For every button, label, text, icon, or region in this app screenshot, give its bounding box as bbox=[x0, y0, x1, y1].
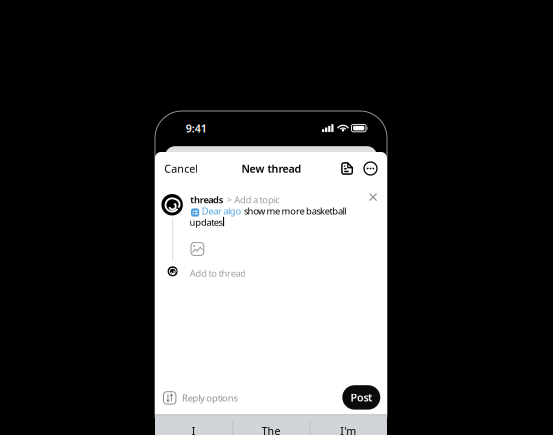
staticText: Post bbox=[350, 390, 372, 404]
button[interactable]: More options bbox=[360, 158, 381, 179]
staticText: Add to thread bbox=[190, 267, 246, 279]
button[interactable]: Add photo bbox=[187, 239, 208, 259]
staticText: show me more basketball bbox=[244, 205, 346, 217]
staticText: updates bbox=[190, 216, 222, 228]
button[interactable]: I'm bbox=[310, 414, 387, 435]
staticText: 9:41 bbox=[186, 121, 207, 135]
staticText: > bbox=[227, 193, 232, 206]
button[interactable]: The bbox=[232, 414, 310, 435]
button[interactable]: I bbox=[155, 414, 232, 435]
button[interactable]: Add a topic bbox=[232, 190, 281, 209]
staticText: The bbox=[261, 424, 280, 435]
staticText: New thread bbox=[242, 161, 302, 176]
button[interactable]: Remove post bbox=[365, 189, 382, 206]
button[interactable]: Reply options bbox=[159, 388, 241, 408]
staticText: threads bbox=[190, 193, 224, 206]
staticText: Dear algo bbox=[202, 205, 241, 217]
button[interactable]: Post bbox=[342, 385, 380, 410]
staticText: Cancel bbox=[164, 161, 198, 176]
staticText: Reply options bbox=[182, 392, 237, 404]
staticText: I'm bbox=[340, 424, 356, 435]
button[interactable]: Drafts bbox=[337, 158, 358, 179]
staticText: Add a topic bbox=[234, 193, 279, 206]
button[interactable]: Cancel bbox=[159, 155, 203, 182]
staticText: I bbox=[192, 424, 196, 435]
button[interactable]: Add to thread bbox=[155, 263, 371, 279]
